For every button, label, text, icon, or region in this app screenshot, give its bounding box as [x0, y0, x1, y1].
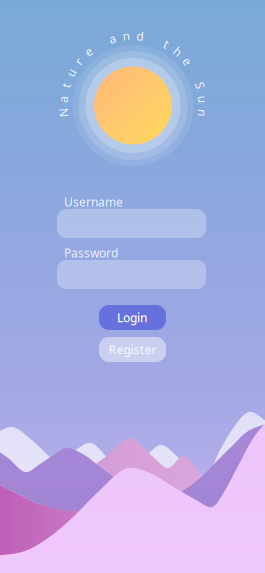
- staticText: t: [64, 77, 68, 93]
- staticText: e: [85, 43, 92, 59]
- staticText: a: [60, 91, 67, 107]
- button[interactable]: Register: [99, 337, 166, 362]
- staticText: S: [197, 77, 204, 93]
- button[interactable]: Login: [99, 305, 166, 330]
- staticText: h: [174, 43, 181, 59]
- staticText: Register: [108, 341, 156, 357]
- staticText: t: [164, 36, 168, 52]
- staticText: N: [59, 105, 68, 121]
- staticText: Login: [117, 309, 148, 325]
- staticText: d: [136, 28, 143, 44]
- staticText: n: [123, 28, 130, 44]
- staticText: Username: [64, 194, 123, 210]
- staticText: Password: [64, 245, 118, 261]
- staticText: e: [184, 53, 191, 69]
- staticText: u: [68, 65, 75, 81]
- staticText: r: [76, 53, 81, 69]
- staticText: u: [199, 91, 206, 107]
- staticText: n: [199, 105, 206, 121]
- staticText: a: [109, 31, 116, 46]
